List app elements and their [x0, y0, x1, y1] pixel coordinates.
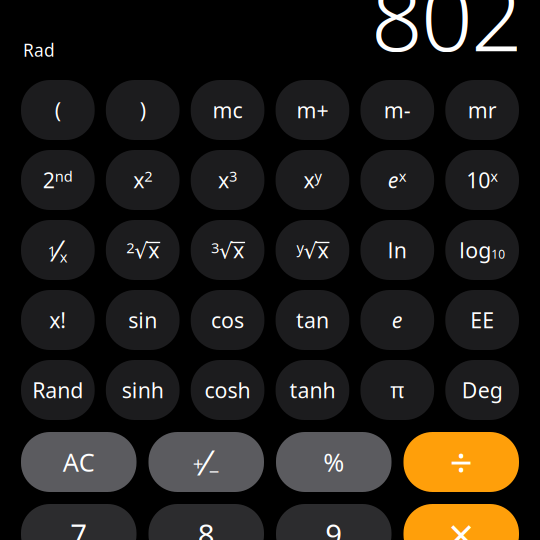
staticText: sin: [128, 306, 157, 334]
button[interactable]: x2: [106, 150, 180, 210]
staticText: x!: [49, 306, 66, 334]
button[interactable]: log10: [445, 220, 519, 280]
staticText: 2√x: [126, 236, 159, 264]
button[interactable]: y√x: [276, 220, 349, 280]
button[interactable]: 7: [21, 504, 136, 540]
staticText: +⁄−: [193, 439, 220, 485]
staticText: y√x: [296, 236, 328, 264]
button[interactable]: ÷: [403, 432, 519, 492]
staticText: 2nd: [43, 166, 73, 194]
button[interactable]: ln: [360, 220, 434, 280]
button[interactable]: cos: [191, 290, 264, 350]
button[interactable]: sinh: [106, 360, 180, 420]
button[interactable]: x3: [191, 150, 264, 210]
staticText: ln: [388, 236, 407, 264]
staticText: EE: [470, 306, 494, 334]
button[interactable]: 1⁄x: [21, 220, 95, 280]
button[interactable]: ): [106, 80, 180, 140]
button[interactable]: π: [360, 360, 434, 420]
staticText: π: [390, 376, 404, 404]
staticText: m-: [384, 96, 411, 124]
staticText: (: [55, 96, 61, 124]
button[interactable]: 2nd: [21, 150, 95, 210]
staticText: 1⁄x: [48, 230, 68, 269]
staticText: 7: [70, 514, 87, 540]
button[interactable]: Deg: [445, 360, 519, 420]
button[interactable]: x!: [21, 290, 95, 350]
button[interactable]: 2√x: [106, 220, 180, 280]
staticText: ex: [388, 166, 407, 194]
button[interactable]: tan: [276, 290, 349, 350]
button[interactable]: 10x: [445, 150, 519, 210]
staticText: x2: [133, 166, 152, 194]
staticText: x3: [218, 166, 237, 194]
button[interactable]: m-: [360, 80, 434, 140]
staticText: cosh: [205, 376, 251, 404]
button[interactable]: +⁄−: [148, 432, 264, 492]
staticText: sinh: [122, 376, 164, 404]
staticText: e: [392, 306, 403, 334]
staticText: 9: [325, 514, 342, 540]
button[interactable]: AC: [21, 432, 136, 492]
staticText: ): [140, 96, 146, 124]
staticText: 10x: [466, 166, 498, 194]
staticText: mc: [213, 96, 243, 124]
staticText: xy: [303, 166, 321, 194]
staticText: AC: [63, 445, 95, 479]
button[interactable]: Rand: [21, 360, 95, 420]
button[interactable]: ex: [360, 150, 434, 210]
button[interactable]: mr: [445, 80, 519, 140]
staticText: tan: [296, 306, 329, 334]
button[interactable]: 9: [276, 504, 391, 540]
staticText: tanh: [289, 376, 335, 404]
button[interactable]: EE: [445, 290, 519, 350]
staticText: cos: [211, 306, 244, 334]
staticText: log10: [459, 236, 505, 264]
staticText: m+: [296, 96, 328, 124]
staticText: %: [323, 445, 344, 479]
staticText: ×: [448, 504, 474, 540]
staticText: Deg: [462, 376, 503, 404]
button[interactable]: %: [276, 432, 391, 492]
staticText: 3√x: [211, 236, 244, 264]
button[interactable]: xy: [276, 150, 349, 210]
button[interactable]: tanh: [276, 360, 349, 420]
staticText: 8: [198, 514, 215, 540]
button[interactable]: sin: [106, 290, 180, 350]
button[interactable]: ×: [403, 504, 519, 540]
button[interactable]: e: [360, 290, 434, 350]
button[interactable]: cosh: [191, 360, 264, 420]
button[interactable]: mc: [191, 80, 264, 140]
button[interactable]: 3√x: [191, 220, 264, 280]
button[interactable]: 8: [148, 504, 264, 540]
staticText: mr: [468, 96, 497, 124]
staticText: 802: [371, 0, 523, 76]
staticText: ÷: [450, 435, 473, 488]
button[interactable]: (: [21, 80, 95, 140]
button[interactable]: m+: [276, 80, 349, 140]
staticText: Rand: [32, 376, 83, 404]
staticText: Rad: [23, 38, 55, 61]
